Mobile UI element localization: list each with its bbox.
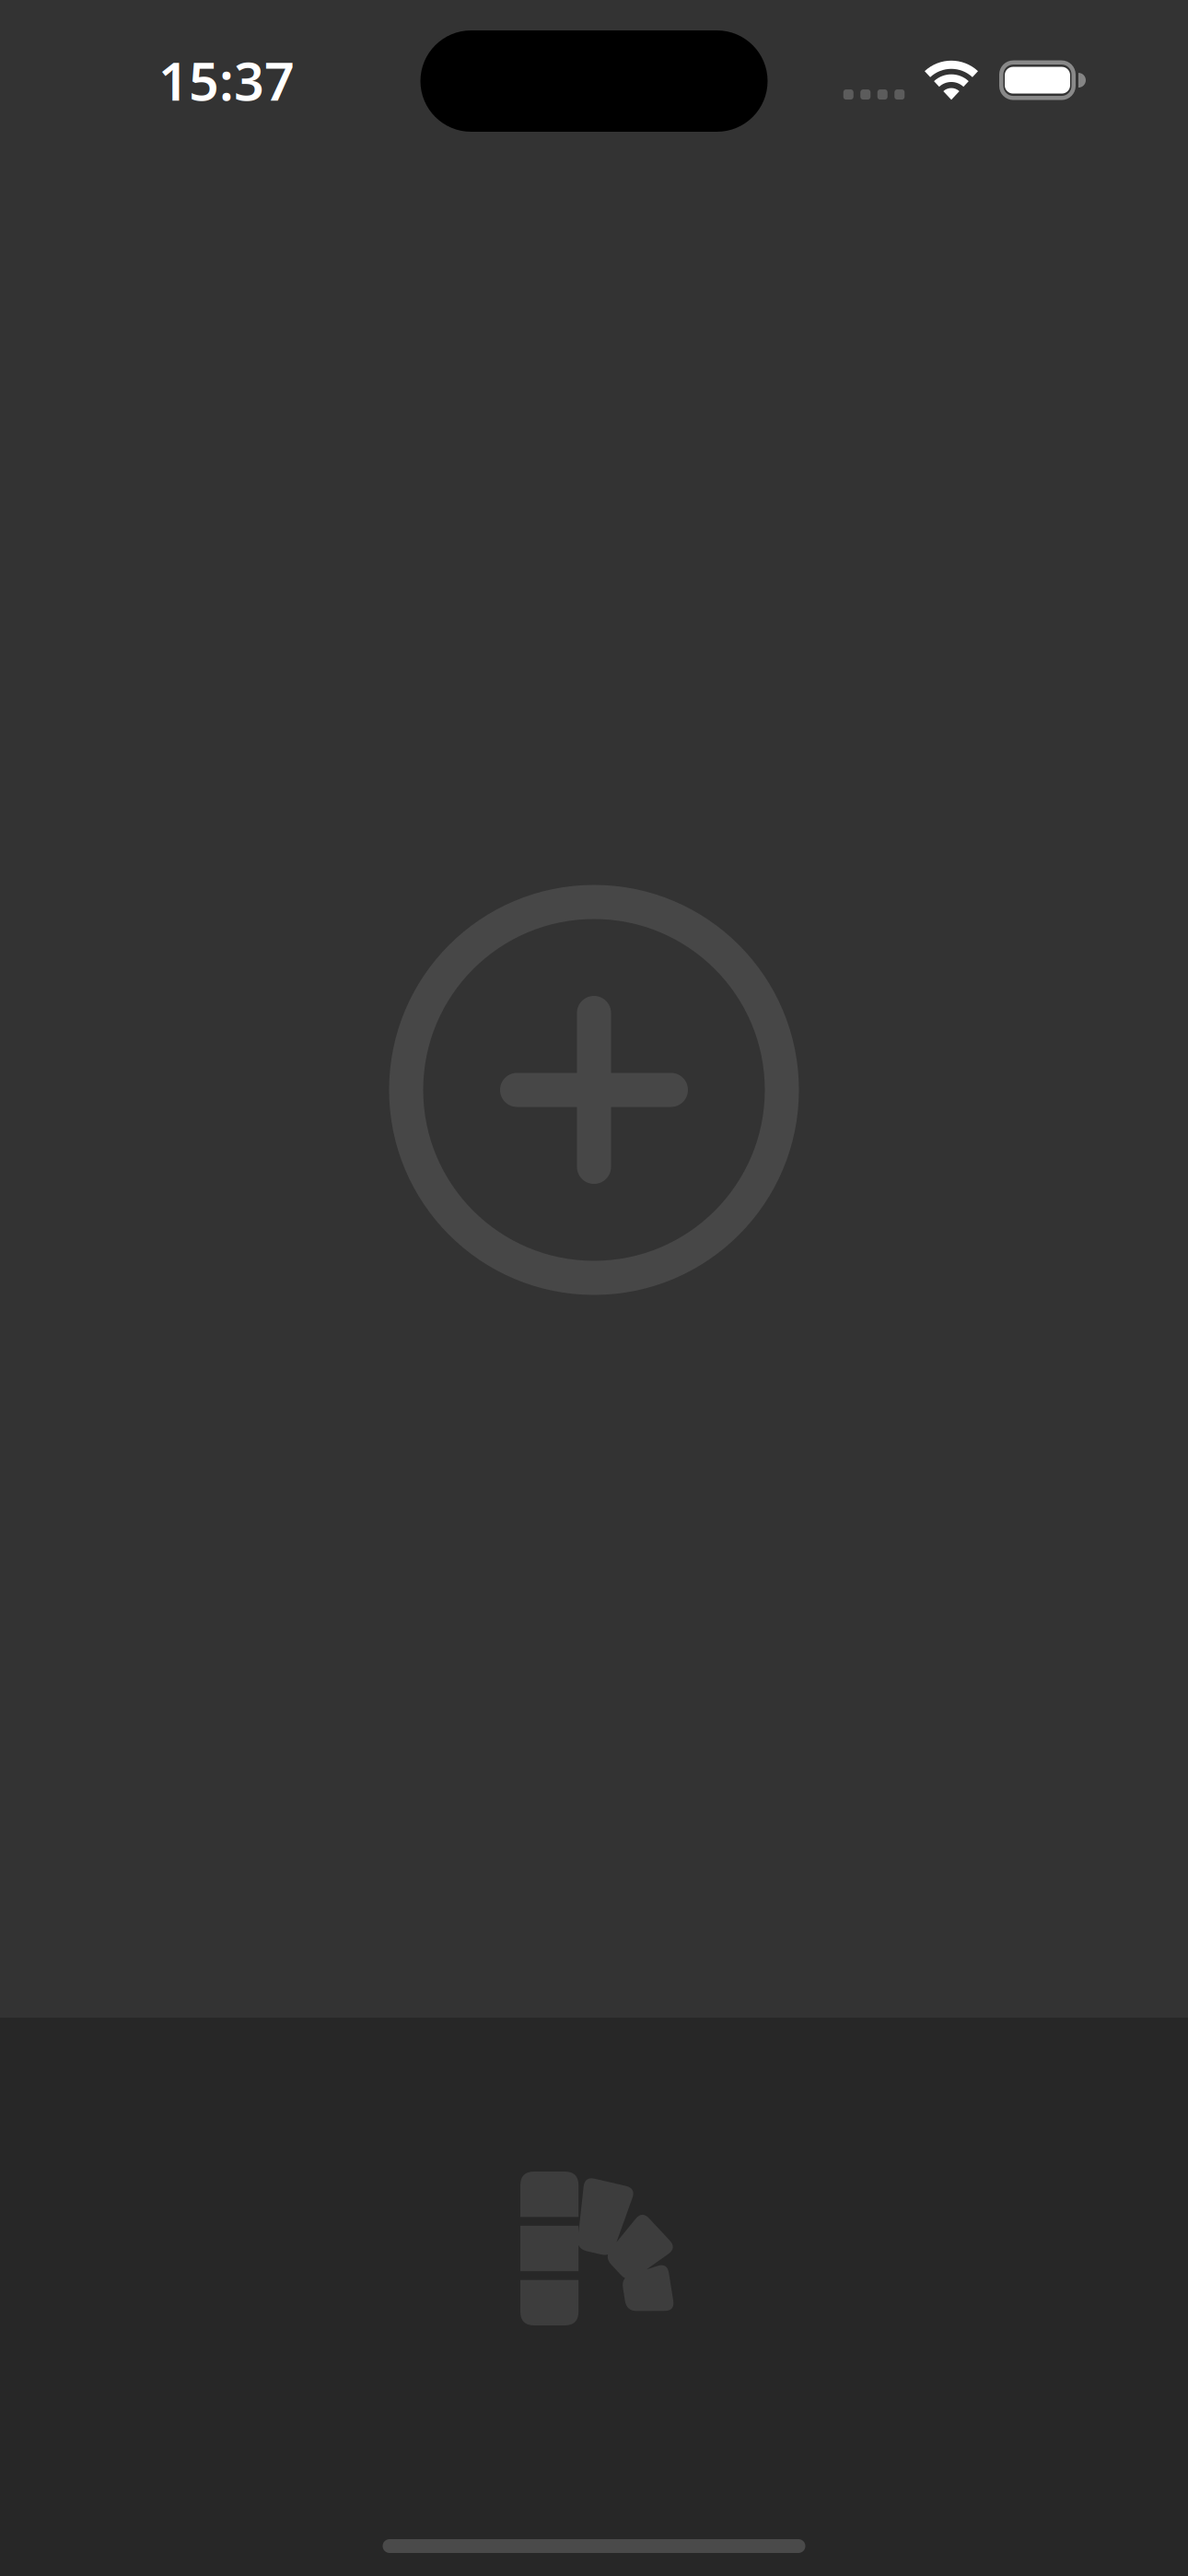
button[interactable]: Add — [389, 884, 799, 1295]
button[interactable]: App home — [520, 2172, 668, 2325]
staticText: 15:37 — [158, 45, 295, 115]
